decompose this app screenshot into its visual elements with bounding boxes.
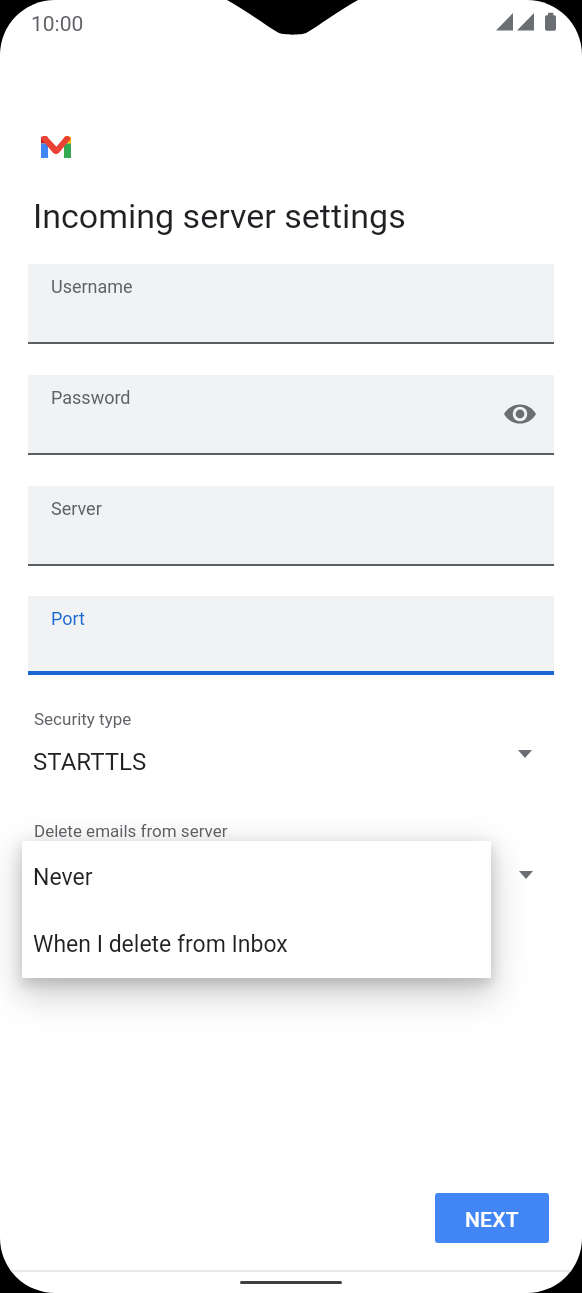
button[interactable]: Password: [28, 375, 554, 453]
staticText: Port: [51, 608, 85, 629]
staticText: Security type: [34, 709, 132, 729]
button[interactable]: When I delete from Inbox: [22, 909, 491, 978]
button[interactable]: Username: [28, 264, 554, 342]
button[interactable]: Delete emails from server dropdown: [504, 853, 548, 897]
staticText: Password: [51, 387, 131, 408]
staticText: Never: [33, 864, 93, 891]
staticText: Server: [51, 498, 102, 519]
staticText: Incoming server settings: [33, 196, 406, 236]
button[interactable]: NEXT: [435, 1193, 549, 1243]
button[interactable]: Show password: [498, 392, 542, 436]
staticText: When I delete from Inbox: [33, 931, 288, 958]
button[interactable]: Port: [28, 596, 554, 671]
button[interactable]: Server: [28, 486, 554, 564]
staticText: STARTTLS: [33, 748, 147, 776]
staticText: 10:00: [31, 12, 84, 37]
button[interactable]: Security type dropdown: [503, 732, 547, 776]
staticText: Username: [51, 276, 133, 297]
staticText: NEXT: [465, 1208, 519, 1233]
staticText: Delete emails from server: [34, 821, 228, 841]
button[interactable]: Never: [22, 841, 491, 909]
